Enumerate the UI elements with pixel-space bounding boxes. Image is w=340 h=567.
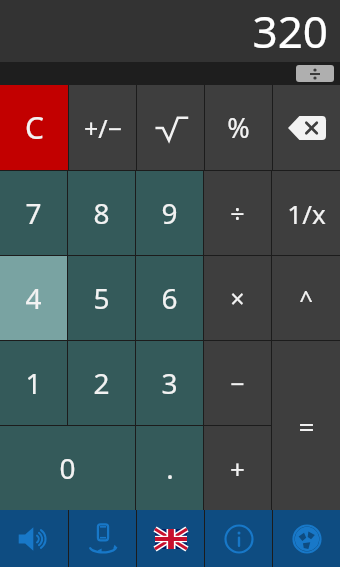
- staticText: 3: [161, 364, 178, 402]
- button[interactable]: Sound: [0, 510, 68, 567]
- staticText: 0: [59, 449, 76, 487]
- button[interactable]: 0: [0, 426, 135, 510]
- staticText: −: [230, 366, 245, 400]
- staticText: +/−: [84, 111, 122, 145]
- button[interactable]: Language: [137, 510, 204, 567]
- button[interactable]: 5: [68, 256, 135, 340]
- staticText: 1: [25, 364, 42, 402]
- staticText: 320: [252, 1, 328, 61]
- staticText: ÷: [230, 196, 245, 230]
- staticText: ×: [230, 281, 245, 315]
- button[interactable]: 3: [136, 341, 203, 425]
- button[interactable]: Divide: [296, 65, 334, 82]
- button[interactable]: 1: [0, 341, 67, 425]
- button[interactable]: 2: [68, 341, 135, 425]
- staticText: C: [25, 107, 44, 148]
- staticText: 6: [161, 279, 178, 317]
- button[interactable]: Backspace: [273, 85, 340, 170]
- staticText: +: [230, 451, 245, 486]
- button[interactable]: Percent: [205, 85, 272, 170]
- button[interactable]: Divide: [204, 171, 271, 255]
- button[interactable]: Clear: [0, 85, 68, 170]
- staticText: 1/x: [287, 196, 326, 231]
- staticText: 9: [161, 194, 178, 232]
- staticText: .: [166, 449, 174, 487]
- button[interactable]: Equals: [272, 341, 340, 510]
- staticText: 8: [93, 194, 110, 232]
- button[interactable]: 7: [0, 171, 67, 255]
- staticText: 7: [25, 194, 42, 232]
- staticText: =: [298, 407, 315, 445]
- button[interactable]: .: [136, 426, 203, 510]
- button[interactable]: Reciprocal: [272, 171, 340, 255]
- staticText: ^: [299, 282, 313, 315]
- staticText: 5: [93, 279, 110, 317]
- button[interactable]: Power: [272, 256, 340, 340]
- button[interactable]: Web: [273, 510, 340, 567]
- button[interactable]: Square root: [137, 85, 204, 170]
- button[interactable]: 4: [0, 256, 67, 340]
- staticText: 2: [93, 364, 110, 402]
- button[interactable]: Multiply: [204, 256, 271, 340]
- staticText: %: [227, 109, 250, 146]
- button[interactable]: Plus minus: [69, 85, 136, 170]
- button[interactable]: Info: [205, 510, 272, 567]
- button[interactable]: 9: [136, 171, 203, 255]
- button[interactable]: Plus: [204, 426, 271, 510]
- button[interactable]: 6: [136, 256, 203, 340]
- button[interactable]: Minus: [204, 341, 271, 425]
- staticText: 4: [25, 279, 42, 317]
- button[interactable]: Rotate: [69, 510, 136, 567]
- button[interactable]: 8: [68, 171, 135, 255]
